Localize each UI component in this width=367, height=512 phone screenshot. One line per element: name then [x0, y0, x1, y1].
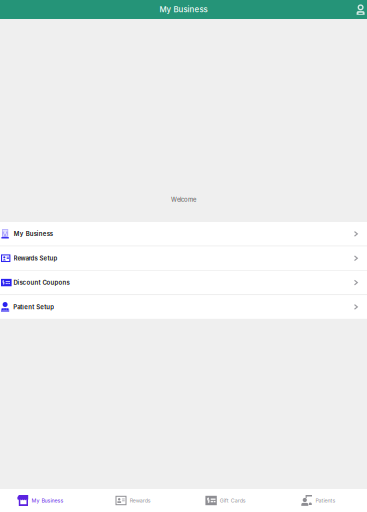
- button[interactable]: Patients: [272, 489, 364, 512]
- staticText: Patients: [315, 497, 335, 504]
- button[interactable]: Discount Coupons: [0, 271, 367, 294]
- staticText: My Business: [32, 497, 64, 504]
- staticText: Rewards: [130, 497, 151, 504]
- staticText: Rewards Setup: [14, 255, 58, 262]
- button[interactable]: Rewards Setup: [0, 246, 367, 270]
- staticText: Discount Coupons: [14, 279, 70, 286]
- button[interactable]: My Business: [0, 489, 87, 512]
- button[interactable]: Patient Setup: [0, 295, 367, 319]
- button[interactable]: Account: [356, 4, 367, 15]
- button[interactable]: Gift Cards: [179, 489, 272, 512]
- staticText: Gift Cards: [220, 497, 246, 504]
- staticText: My Business: [159, 5, 207, 14]
- staticText: My Business: [14, 230, 53, 237]
- button[interactable]: My Business: [0, 222, 367, 246]
- staticText: Patient Setup: [13, 303, 54, 311]
- staticText: Welcome: [171, 196, 196, 203]
- button[interactable]: Rewards: [87, 489, 179, 512]
